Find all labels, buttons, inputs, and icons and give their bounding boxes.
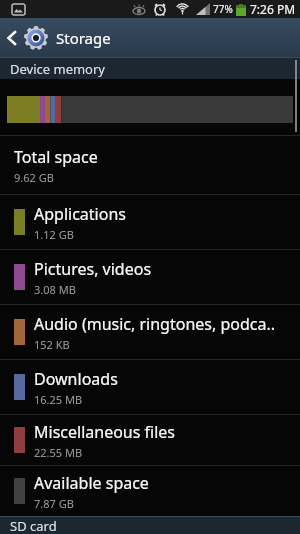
button[interactable]: Audio (music, ringtones, podca.. (0, 304, 300, 359)
staticText: 1.12 GB (34, 227, 74, 242)
staticText: 77% (213, 2, 233, 16)
staticText: 22.55 MB (34, 445, 83, 460)
staticText: Downloads (34, 368, 118, 390)
staticText: 7:26 PM (250, 1, 296, 17)
staticText: Applications (34, 203, 126, 225)
staticText: 9.62 GB (14, 170, 54, 185)
button[interactable]: Miscellaneous files (0, 414, 300, 465)
button[interactable]: Total space (0, 135, 300, 194)
staticText: Device memory (10, 60, 105, 78)
staticText: 3.08 MB (34, 282, 76, 297)
button[interactable]: Pictures, videos (0, 249, 300, 304)
staticText: SD card (10, 517, 57, 534)
staticText: 7.87 GB (34, 496, 74, 511)
staticText: Audio (music, ringtones, podca.. (34, 313, 276, 335)
button[interactable]: Storage (0, 18, 300, 57)
staticText: 16.25 MB (34, 392, 83, 407)
staticText: Pictures, videos (34, 258, 152, 280)
staticText: Miscellaneous files (34, 421, 175, 443)
button[interactable]: Downloads (0, 359, 300, 414)
staticText: Total space (14, 146, 98, 168)
button[interactable]: Applications (0, 194, 300, 249)
staticText: Storage (56, 28, 111, 48)
button[interactable]: Available space (0, 465, 300, 516)
staticText: Available space (34, 472, 149, 494)
staticText: 152 KB (34, 337, 70, 352)
